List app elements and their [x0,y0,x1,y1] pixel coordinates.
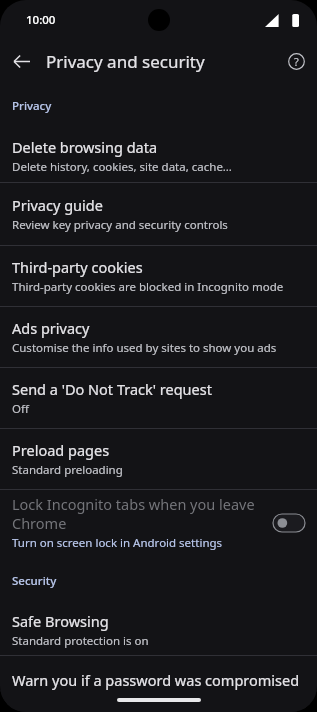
button[interactable]: Warn you if a password was compromised i… [0,656,317,690]
button[interactable]: Ads privacy [0,307,317,367]
staticText: Preload pages [12,440,110,460]
staticText: Security [12,573,57,589]
staticText: Privacy guide [12,195,103,215]
staticText: Turn on screen lock in Android settings [12,535,223,551]
button[interactable]: Back [0,40,42,82]
staticText: Third-party cookies [12,257,143,277]
button[interactable]: Send a 'Do Not Track' request [0,368,317,428]
staticText: Privacy [12,98,52,114]
staticText: Safe Browsing [12,611,109,631]
staticText: Send a 'Do Not Track' request [12,379,212,399]
staticText: Customise the info used by sites to show… [12,340,277,356]
staticText: Standard preloading [12,462,123,478]
button[interactable]: Preload pages [0,429,317,489]
staticText: Ads privacy [12,318,90,338]
button[interactable]: Help [275,40,317,82]
staticText: Off [12,401,29,417]
staticText: 10:00 [26,12,56,28]
button[interactable]: Lock Incognito tabs when you leave Chrom… [0,490,317,555]
button[interactable]: Safe Browsing [0,605,317,655]
staticText: Privacy and security [46,50,275,73]
staticText: ? [294,54,299,69]
staticText: Delete history, cookies, site data, cach… [12,159,232,175]
staticText: Warn you if a password was compromised i… [12,670,305,690]
staticText: Third-party cookies are blocked in Incog… [12,279,284,295]
staticText: Standard protection is on [12,633,149,649]
staticText: Delete browsing data [12,137,158,157]
staticText: Review key privacy and security controls [12,217,228,233]
button[interactable]: Delete browsing data [0,129,317,182]
button[interactable]: Privacy guide [0,183,317,245]
button[interactable]: Third-party cookies [0,246,317,306]
staticText: Lock Incognito tabs when you leave Chrom… [12,494,263,533]
button[interactable]: Lock Incognito tabs toggle [273,514,305,532]
